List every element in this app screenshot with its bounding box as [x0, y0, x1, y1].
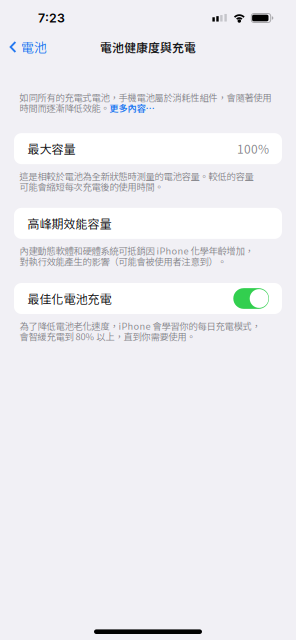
staticText: 最佳化電池充電 — [27, 290, 111, 307]
staticText: 電池 — [21, 38, 47, 56]
staticText: 如同所有的充電式電池，手機電池屬於消耗性組件，會隨著使用 — [19, 90, 271, 104]
button[interactable]: 最佳化電池充電 — [14, 283, 282, 314]
button[interactable]: 高峰期效能容量 — [14, 208, 282, 239]
staticText: 100% — [237, 140, 269, 157]
staticText: 7:23 — [38, 10, 65, 25]
staticText: 高峰期效能容量 — [27, 215, 111, 232]
button[interactable]: 最大容量 — [14, 133, 282, 164]
staticText: 可能會縮短每次充電後的使用時間。 — [19, 180, 163, 193]
staticText: 對執行效能產生的影響（可能會被使用者注意到）。 — [19, 254, 226, 268]
staticText: 這是相較於電池為全新狀態時測量的電池容量。較低的容量 — [19, 169, 253, 182]
staticText: 內建動態軟體和硬體系統可抵銷因 iPhone 化學年齡增加， — [19, 244, 253, 257]
staticText: 電池健康度與充電 — [100, 38, 196, 56]
button[interactable]: 電池 — [0, 33, 53, 61]
staticText: 時間而逐漸降低效能。 — [19, 101, 109, 114]
staticText: 為了降低電池老化速度，iPhone 會學習你的每日充電模式， — [19, 319, 260, 332]
staticText: 最大容量 — [27, 140, 75, 157]
button[interactable]: 最佳化電池充電 — [233, 288, 269, 309]
staticText: 更多內容⋯ — [109, 101, 154, 114]
button[interactable]: 更多內容⋯ — [109, 101, 154, 114]
staticText: 會智緩充電到 80% 以上，直到你需要使用。 — [19, 329, 195, 343]
